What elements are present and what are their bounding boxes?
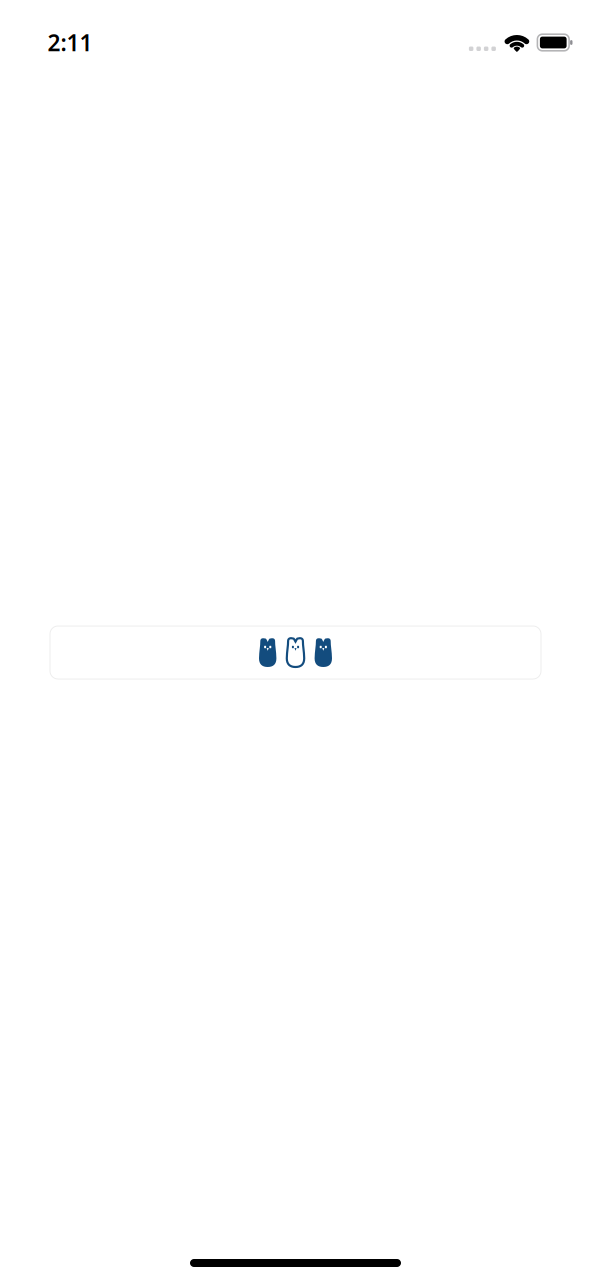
button[interactable]: Loading bbox=[50, 626, 541, 679]
staticText: 2:11 bbox=[47, 27, 92, 57]
